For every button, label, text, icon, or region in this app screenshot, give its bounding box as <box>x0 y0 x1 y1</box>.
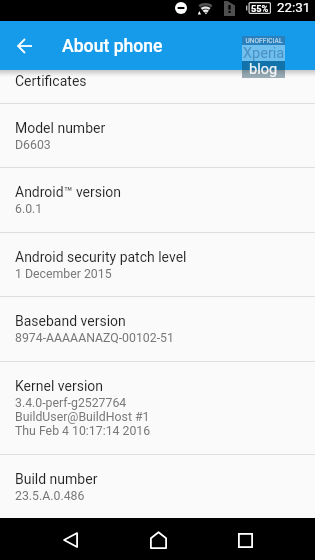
staticText: Baseband version <box>15 313 126 330</box>
button[interactable]: Navigate up <box>0 21 48 70</box>
staticText: 55% <box>251 3 269 14</box>
staticText: blog <box>249 61 278 78</box>
button[interactable]: Model number <box>0 104 315 167</box>
staticText: Certificates <box>15 73 87 90</box>
button[interactable]: Back <box>40 518 100 560</box>
staticText: Xperia <box>243 45 285 61</box>
button[interactable]: Home <box>128 518 188 560</box>
staticText: Android™ version <box>15 184 122 201</box>
staticText: 22:31 <box>277 0 311 16</box>
staticText: Model number <box>15 120 106 137</box>
staticText: 1 December 2015 <box>15 267 112 281</box>
staticText: UNOFFICIAL <box>245 37 283 45</box>
staticText: Kernel version <box>15 378 104 395</box>
staticText: D6603 <box>15 138 51 152</box>
staticText: 3.4.0-perf-g2527764 <box>15 396 127 410</box>
button[interactable]: Android security patch level <box>0 233 315 296</box>
button[interactable]: Recent apps <box>215 518 275 560</box>
staticText: 6.0.1 <box>15 202 43 216</box>
button[interactable]: Build number <box>0 455 315 518</box>
staticText: Android security patch level <box>15 249 187 266</box>
staticText: 8974-AAAAANAZQ-00102-51 <box>15 331 174 345</box>
button[interactable]: Certificates <box>0 70 315 103</box>
button[interactable]: Baseband version <box>0 297 315 361</box>
staticText: About phone <box>62 36 163 57</box>
button[interactable]: Kernel version <box>0 362 315 454</box>
staticText: Thu Feb 4 10:17:14 2016 <box>15 424 151 438</box>
staticText: 23.5.A.0.486 <box>15 489 85 503</box>
button[interactable]: Android™ version <box>0 168 315 232</box>
staticText: BuildUser@BuildHost #1 <box>15 410 150 424</box>
staticText: Build number <box>15 471 98 488</box>
